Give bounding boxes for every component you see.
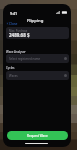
button[interactable]: Select registered name [6,54,69,63]
staticText: Select registered name [9,57,41,61]
staticText: 2489.68 $ [9,32,30,38]
staticText: 9:41 [10,11,18,16]
button[interactable]: Close [5,19,19,27]
button[interactable]: Max. Purchase [6,27,69,39]
button[interactable]: Waves [6,71,69,80]
button[interactable]: Request Wave [7,131,68,140]
staticText: Close [9,21,18,25]
staticText: Flipping [27,18,44,24]
staticText: Wave Analyser [6,50,26,54]
staticText: Waves [9,74,18,78]
staticText: Cycles [6,66,15,70]
staticText: Request Wave [27,134,48,138]
staticText: Max. Purchase [9,29,28,33]
